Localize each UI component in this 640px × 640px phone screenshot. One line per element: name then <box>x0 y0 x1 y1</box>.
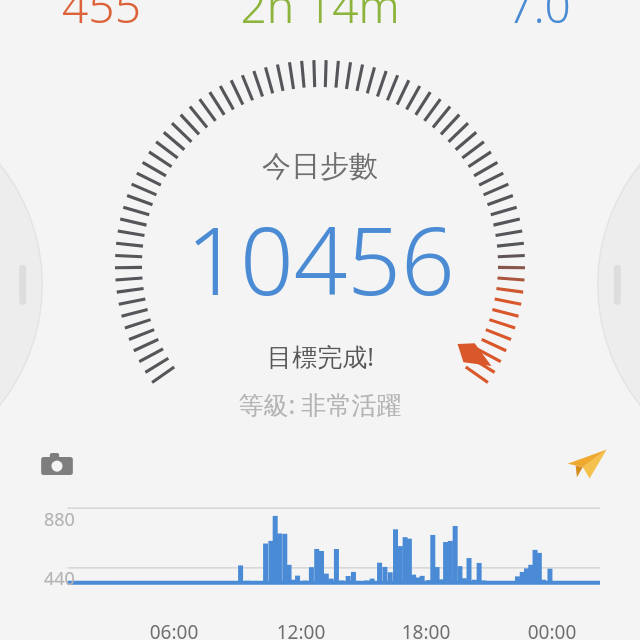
staticText: 2h 14m <box>240 0 400 30</box>
staticText: 18:00 <box>396 619 456 640</box>
staticText: 等級: 非常活躍 <box>238 387 402 421</box>
staticText: 7.0 <box>507 0 571 30</box>
staticText: 880 <box>44 507 75 532</box>
staticText: 今日步數 <box>262 148 378 185</box>
staticText: 00:00 <box>522 619 582 640</box>
button[interactable]: Take photo <box>30 438 84 492</box>
button[interactable]: 2h 14m <box>203 0 437 30</box>
staticText: 10456 <box>186 195 455 323</box>
button[interactable]: 455 <box>0 0 203 30</box>
button[interactable]: 7.0 <box>437 0 640 30</box>
staticText: 目標完成! <box>267 339 374 373</box>
staticText: 06:00 <box>144 619 204 640</box>
button[interactable]: Share <box>558 436 616 494</box>
staticText: 12:00 <box>271 619 331 640</box>
staticText: 440 <box>44 566 75 591</box>
staticText: 455 <box>62 0 141 30</box>
